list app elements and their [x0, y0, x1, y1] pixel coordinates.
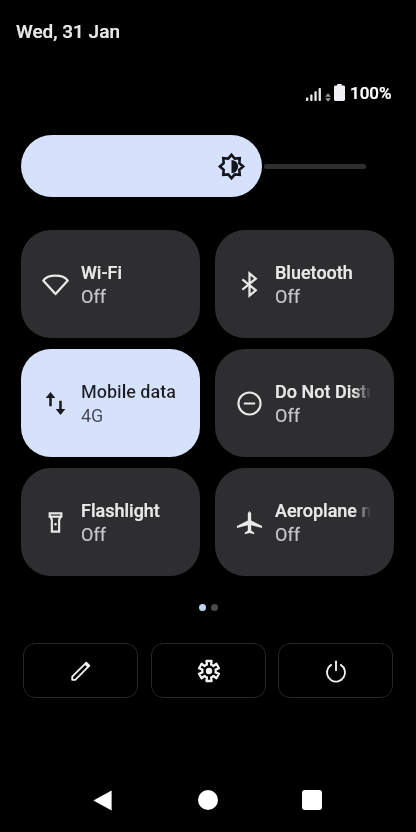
staticText: Do Not Disturb: [275, 381, 371, 402]
button[interactable]: Home: [188, 780, 228, 820]
button[interactable]: Bluetooth: [215, 230, 394, 338]
button[interactable]: Mobile data: [21, 349, 200, 457]
staticText: Mobile data: [81, 381, 176, 402]
staticText: Aeroplane mode: [275, 500, 371, 521]
button[interactable]: Brightness: [21, 135, 395, 197]
staticText: Bluetooth: [275, 262, 353, 283]
staticText: 4G: [81, 405, 104, 426]
button[interactable]: Edit: [23, 643, 138, 698]
staticText: Wed, 31 Jan: [16, 20, 120, 42]
staticText: Wi-Fi: [81, 262, 123, 283]
button[interactable]: Recent apps: [292, 780, 332, 820]
button[interactable]: Settings: [151, 643, 266, 698]
staticText: Off: [81, 524, 106, 545]
button[interactable]: Power: [278, 643, 393, 698]
button[interactable]: Do Not Disturb: [215, 349, 394, 457]
staticText: Flashlight: [81, 500, 160, 521]
button[interactable]: Wi-Fi: [21, 230, 200, 338]
staticText: Off: [81, 286, 106, 307]
staticText: Off: [275, 524, 300, 545]
staticText: Off: [275, 405, 300, 426]
staticText: Off: [275, 286, 300, 307]
button[interactable]: Flashlight: [21, 468, 200, 576]
staticText: 100%: [350, 83, 392, 103]
button[interactable]: Back: [83, 780, 123, 820]
button[interactable]: Aeroplane mode: [215, 468, 394, 576]
